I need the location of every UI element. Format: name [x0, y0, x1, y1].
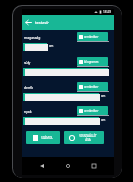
button[interactable]: centiméter [77, 106, 108, 115]
button[interactable]: kilogramm [77, 57, 108, 66]
staticText: 18:29 [103, 10, 112, 14]
staticText: centiméter [84, 35, 99, 39]
staticText: kilogramm [84, 60, 99, 64]
staticText: derék [24, 85, 34, 90]
button[interactable]: SZÁMOL [26, 131, 60, 144]
staticText: nyak [24, 109, 32, 114]
staticText: SZÁMOL [41, 136, 53, 140]
button[interactable]: Back [36, 160, 48, 172]
staticText: centiméter [84, 109, 99, 113]
button[interactable]: centiméter [77, 32, 108, 41]
staticText: testzsír [35, 20, 49, 25]
staticText: cm [101, 94, 106, 98]
button[interactable]: VISSZAÁLLÍT ÁSA [64, 131, 104, 144]
staticText: centiméter [84, 85, 99, 89]
button[interactable] [23, 117, 99, 125]
button[interactable] [23, 93, 99, 101]
button[interactable]: Recents [88, 160, 100, 172]
button[interactable]: Home [62, 160, 74, 172]
staticText: magasság [24, 35, 41, 40]
button[interactable]: centiméter [77, 82, 108, 91]
button[interactable] [23, 43, 47, 51]
staticText: cm [101, 118, 106, 122]
staticText: súly [24, 60, 31, 65]
staticText: VISSZAÁLLÍT ÁSA [77, 134, 99, 142]
button[interactable] [23, 68, 108, 76]
staticText: cm [49, 44, 54, 48]
button[interactable]: Back [22, 15, 35, 30]
